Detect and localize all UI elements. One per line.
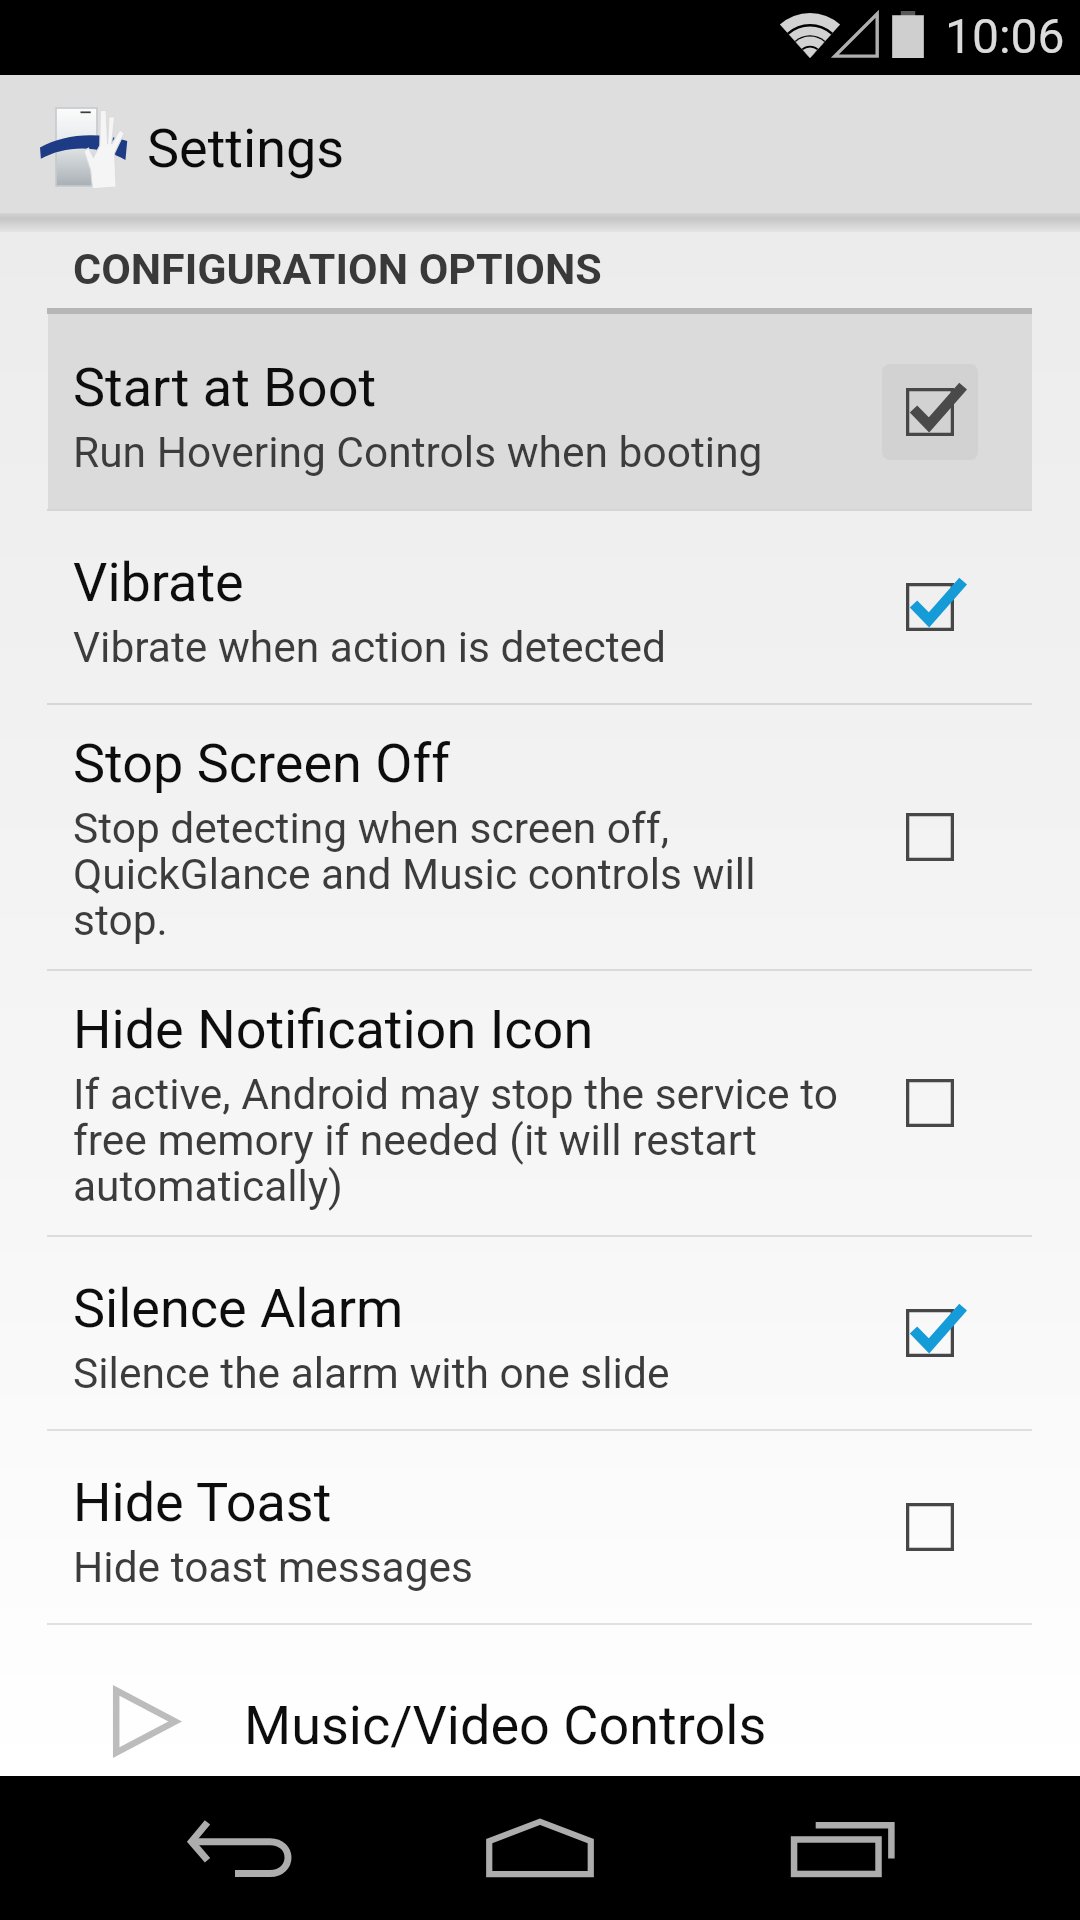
staticText: Run Hovering Controls when booting [73, 428, 763, 478]
button[interactable]: Silence Alarm [0, 1237, 1080, 1429]
staticText: 10:06 [945, 8, 1065, 64]
staticText: Music/Video Controls [244, 1694, 767, 1757]
staticText: Hide Notification Icon [73, 998, 594, 1061]
button[interactable]: Checked [882, 1285, 978, 1381]
staticText: Silence the alarm with one slide [73, 1349, 670, 1399]
button[interactable]: Hide Notification Icon [0, 971, 1080, 1235]
button[interactable]: Hide Toast [0, 1431, 1080, 1623]
staticText: Vibrate [73, 551, 244, 614]
button[interactable]: Back [170, 1785, 310, 1911]
button[interactable]: Checked [882, 364, 978, 460]
button[interactable]: Vibrate [0, 511, 1080, 703]
staticText: CONFIGURATION OPTIONS [73, 244, 602, 294]
staticText: Vibrate when action is detected [73, 623, 667, 673]
staticText: Stop Screen Off [73, 732, 451, 795]
button[interactable]: Music/Video Controls [0, 1625, 1080, 1776]
staticText: Settings [147, 117, 345, 180]
button[interactable]: Home [470, 1785, 610, 1911]
button[interactable]: Stop Screen Off [0, 705, 1080, 969]
button[interactable]: Unchecked [882, 1055, 978, 1151]
staticText: Stop detecting when screen off, QuickGla… [73, 804, 853, 946]
staticText: Hide toast messages [73, 1543, 474, 1593]
staticText: Hide Toast [73, 1471, 332, 1534]
button[interactable]: Start at Boot [0, 314, 1080, 509]
staticText: If active, Android may stop the service … [73, 1070, 853, 1212]
button[interactable]: Recents [773, 1785, 913, 1911]
button[interactable]: Checked [882, 559, 978, 655]
staticText: Start at Boot [73, 356, 377, 419]
button[interactable]: Unchecked [882, 789, 978, 885]
button[interactable]: Unchecked [882, 1479, 978, 1575]
staticText: Silence Alarm [73, 1277, 404, 1340]
